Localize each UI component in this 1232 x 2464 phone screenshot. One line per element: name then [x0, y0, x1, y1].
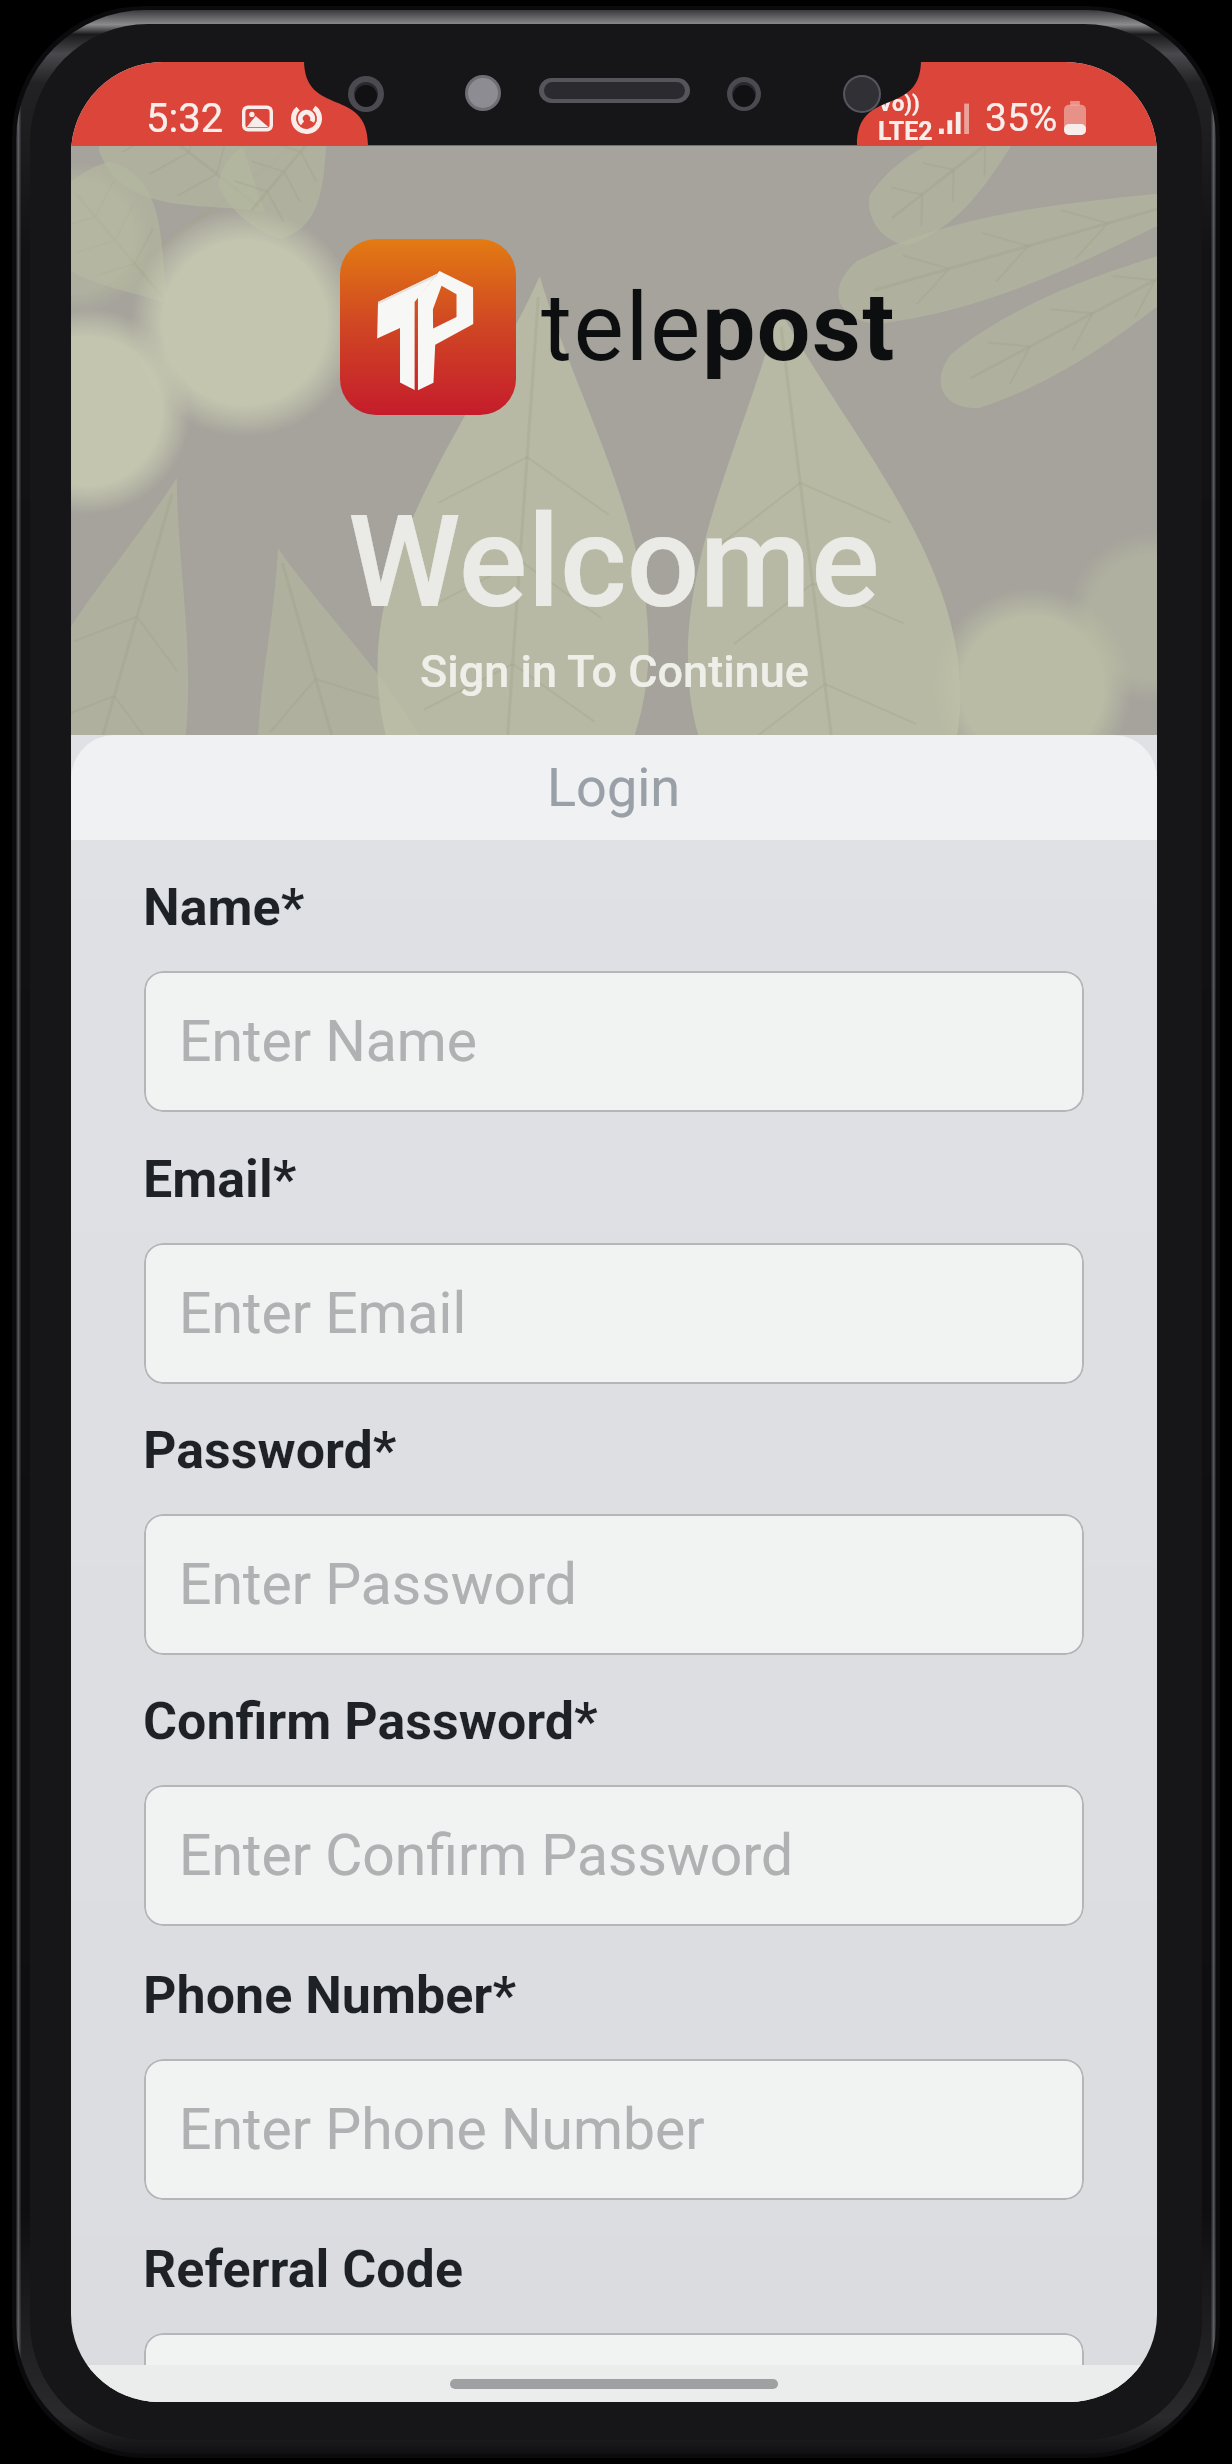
other: Battery 35 percent: [1064, 101, 1086, 135]
staticText: Phone Number*: [143, 1965, 516, 2026]
staticText: 5:32: [146, 95, 224, 142]
staticText: Vo)): [878, 91, 920, 117]
staticText: Login: [547, 756, 681, 819]
staticText: Enter Confirm Password: [179, 1822, 794, 1889]
button[interactable]: Enter Phone Number: [144, 2059, 1084, 2200]
other: Alarm: [291, 103, 322, 134]
button[interactable]: [144, 2333, 1084, 2402]
staticText: telepost: [541, 272, 896, 383]
staticText: Password*: [143, 1420, 397, 1481]
staticText: LTE2: [878, 117, 933, 146]
staticText: Email*: [143, 1149, 297, 1210]
staticText: Name*: [143, 877, 305, 938]
staticText: Enter Name: [179, 1008, 478, 1075]
staticText: Referral Code: [143, 2239, 463, 2300]
staticText: Enter Password: [179, 1551, 577, 1618]
other: Screenshot: [242, 103, 273, 134]
button[interactable]: Login: [71, 735, 1157, 840]
staticText: Enter Phone Number: [179, 2096, 705, 2163]
staticText: Confirm Password*: [143, 1691, 598, 1752]
staticText: Enter Email: [179, 1280, 467, 1347]
button[interactable]: Enter Password: [144, 1514, 1084, 1655]
other: Home: [450, 2379, 778, 2389]
button[interactable]: Enter Name: [144, 971, 1084, 1112]
staticText: Sign in To Continue: [420, 645, 809, 698]
button[interactable]: Enter Confirm Password: [144, 1785, 1084, 1926]
button[interactable]: Enter Email: [144, 1243, 1084, 1384]
staticText: Welcome: [348, 487, 880, 637]
staticText: 35%: [985, 95, 1058, 141]
